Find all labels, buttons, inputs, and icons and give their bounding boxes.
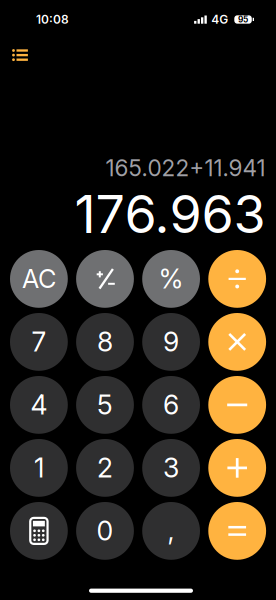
button[interactable]: , (142, 502, 200, 560)
staticText: 165.022+11.941 (105, 154, 265, 182)
staticText: 10:08 (36, 12, 69, 27)
staticText: AC (22, 264, 56, 294)
button[interactable]: AC (10, 250, 68, 308)
staticText: 1 (34, 452, 44, 484)
button[interactable]: Divide (208, 250, 266, 308)
button[interactable]: Multiply (208, 313, 266, 371)
staticText: 6 (163, 389, 179, 421)
button[interactable]: 4 (10, 376, 68, 434)
staticText: 4G (211, 12, 228, 27)
staticText: 5 (97, 389, 113, 421)
button[interactable]: 2 (76, 439, 134, 497)
button[interactable]: Calculator (10, 502, 68, 560)
button[interactable]: Plus minus (76, 250, 134, 308)
button[interactable]: 6 (142, 376, 200, 434)
staticText: 176.963 (74, 182, 265, 245)
button[interactable]: 0 (76, 502, 134, 560)
button[interactable]: 5 (76, 376, 134, 434)
button[interactable]: 9 (142, 313, 200, 371)
staticText: , (168, 515, 175, 547)
button[interactable]: 7 (10, 313, 68, 371)
button[interactable]: % (142, 250, 200, 308)
button[interactable]: 8 (76, 313, 134, 371)
staticText: 4 (30, 389, 47, 421)
staticText: 7 (31, 326, 46, 358)
button[interactable]: 1 (10, 439, 68, 497)
staticText: % (159, 263, 184, 295)
staticText: 0 (96, 515, 113, 547)
button[interactable]: Plus (208, 439, 266, 497)
staticText: 9 (163, 326, 179, 358)
button[interactable]: 3 (142, 439, 200, 497)
staticText: 8 (97, 326, 113, 358)
button[interactable]: Minus (208, 376, 266, 434)
button[interactable]: Equals (208, 502, 266, 560)
button[interactable]: History (4, 39, 36, 71)
staticText: 2 (97, 452, 113, 484)
staticText: 3 (163, 452, 179, 484)
staticText: 95 (238, 14, 248, 24)
